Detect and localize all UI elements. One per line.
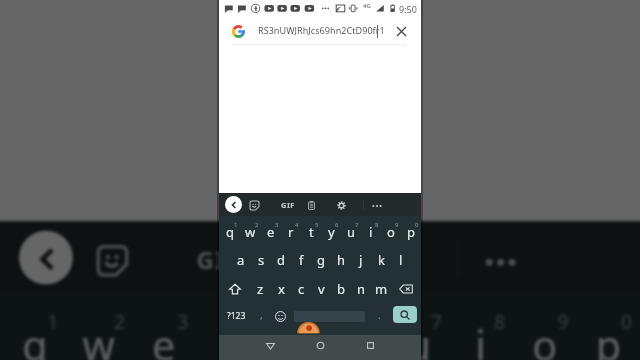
button[interactable]: 7 <box>341 219 361 247</box>
button[interactable]: b <box>331 275 351 303</box>
staticText: . <box>378 308 381 322</box>
staticText: m <box>375 280 388 298</box>
button[interactable]: s <box>251 247 271 275</box>
button[interactable]: x <box>271 275 291 303</box>
staticText: 6 <box>367 310 380 335</box>
staticText: 7 <box>431 310 444 335</box>
staticText: 0 <box>621 310 634 335</box>
button[interactable]: 1 <box>219 219 240 247</box>
button[interactable]: Shift <box>219 275 250 303</box>
button[interactable]: l <box>391 247 411 275</box>
button[interactable]: 3 <box>261 219 281 247</box>
button[interactable]: m <box>371 275 391 303</box>
staticText: t <box>309 223 314 241</box>
button[interactable]: , <box>254 303 268 331</box>
button[interactable]: 2 <box>240 219 261 247</box>
other: More options <box>472 234 526 288</box>
other: Settings <box>361 234 415 288</box>
staticText: z <box>257 280 264 298</box>
button[interactable]: Backspace <box>391 275 421 303</box>
staticText: 7 <box>355 221 359 229</box>
button[interactable]: GIF <box>279 197 297 212</box>
staticText: d <box>277 251 285 269</box>
button[interactable]: 9 <box>381 219 401 247</box>
button[interactable]: n <box>351 275 371 303</box>
staticText: f <box>299 251 304 269</box>
staticText: q <box>226 223 234 241</box>
button[interactable]: More options <box>368 197 385 214</box>
button[interactable]: f <box>291 247 311 275</box>
staticText: GIF <box>196 243 241 275</box>
staticText: j <box>359 251 363 269</box>
staticText: 0 <box>415 221 419 229</box>
button[interactable]: g <box>311 247 331 275</box>
staticText: q <box>22 316 47 360</box>
button[interactable]: v <box>311 275 331 303</box>
staticText: ?123 <box>227 310 246 322</box>
staticText: 1 <box>47 310 60 335</box>
button[interactable]: Back <box>225 196 242 213</box>
button[interactable]: Back <box>260 335 280 355</box>
button[interactable]: Search <box>393 306 417 323</box>
button[interactable]: Google <box>231 24 245 38</box>
button[interactable]: Space <box>292 303 363 331</box>
button[interactable]: Stickers <box>246 197 263 214</box>
staticText: w <box>245 223 256 241</box>
button[interactable]: 0 <box>401 219 421 247</box>
button[interactable]: Home <box>310 335 330 355</box>
button[interactable]: z <box>250 275 271 303</box>
staticText: h <box>337 251 346 269</box>
button[interactable]: Settings <box>333 197 350 214</box>
staticText: v <box>318 280 325 298</box>
button[interactable]: 5 <box>301 219 321 247</box>
staticText: r <box>219 316 238 360</box>
staticText: 2 <box>114 310 127 335</box>
staticText: b <box>337 280 345 298</box>
staticText: 9:50 <box>399 3 417 15</box>
staticText: l <box>399 251 403 269</box>
staticText: u <box>405 316 434 360</box>
staticText: c <box>298 280 305 298</box>
other: Back <box>19 231 73 285</box>
button[interactable]: j <box>351 247 371 275</box>
button[interactable]: 8 <box>361 219 381 247</box>
staticText: n <box>357 280 366 298</box>
other: Clipboard <box>266 234 320 288</box>
button[interactable]: Clipboard <box>303 197 320 214</box>
button[interactable]: 4 <box>281 219 301 247</box>
staticText: u <box>347 223 356 241</box>
button[interactable]: . <box>369 303 389 331</box>
staticText: y <box>328 223 335 241</box>
button[interactable]: ?123 <box>219 303 254 331</box>
other: Stickers <box>85 234 139 288</box>
button[interactable]: k <box>371 247 391 275</box>
button[interactable]: 6 <box>321 219 341 247</box>
staticText: 8 <box>494 310 507 335</box>
staticText: 2 <box>255 221 259 229</box>
staticText: e <box>152 316 177 360</box>
staticText: 9 <box>558 310 570 335</box>
staticText: RS3nUWJRhJcs69hn2CtD90fr1 <box>258 24 385 36</box>
staticText: 3 <box>275 221 279 229</box>
staticText: p <box>596 316 621 360</box>
staticText: i <box>369 223 373 241</box>
button[interactable]: c <box>291 275 311 303</box>
staticText: a <box>237 251 245 269</box>
button[interactable]: Clear search <box>393 23 410 40</box>
staticText: 4 <box>241 310 253 335</box>
staticText: o <box>532 316 558 360</box>
staticText: x <box>278 280 285 298</box>
staticText: o <box>387 223 395 241</box>
button[interactable]: a <box>230 247 251 275</box>
button[interactable]: Emoji <box>268 303 292 331</box>
button[interactable]: Recent apps <box>360 335 380 355</box>
staticText: i <box>475 316 488 360</box>
staticText: t <box>285 316 301 360</box>
staticText: , <box>260 308 263 322</box>
button[interactable]: d <box>271 247 291 275</box>
staticText: GIF <box>281 200 295 210</box>
button[interactable]: h <box>331 247 351 275</box>
staticText: p <box>407 223 415 241</box>
staticText: w <box>82 316 117 360</box>
staticText: g <box>317 251 325 269</box>
